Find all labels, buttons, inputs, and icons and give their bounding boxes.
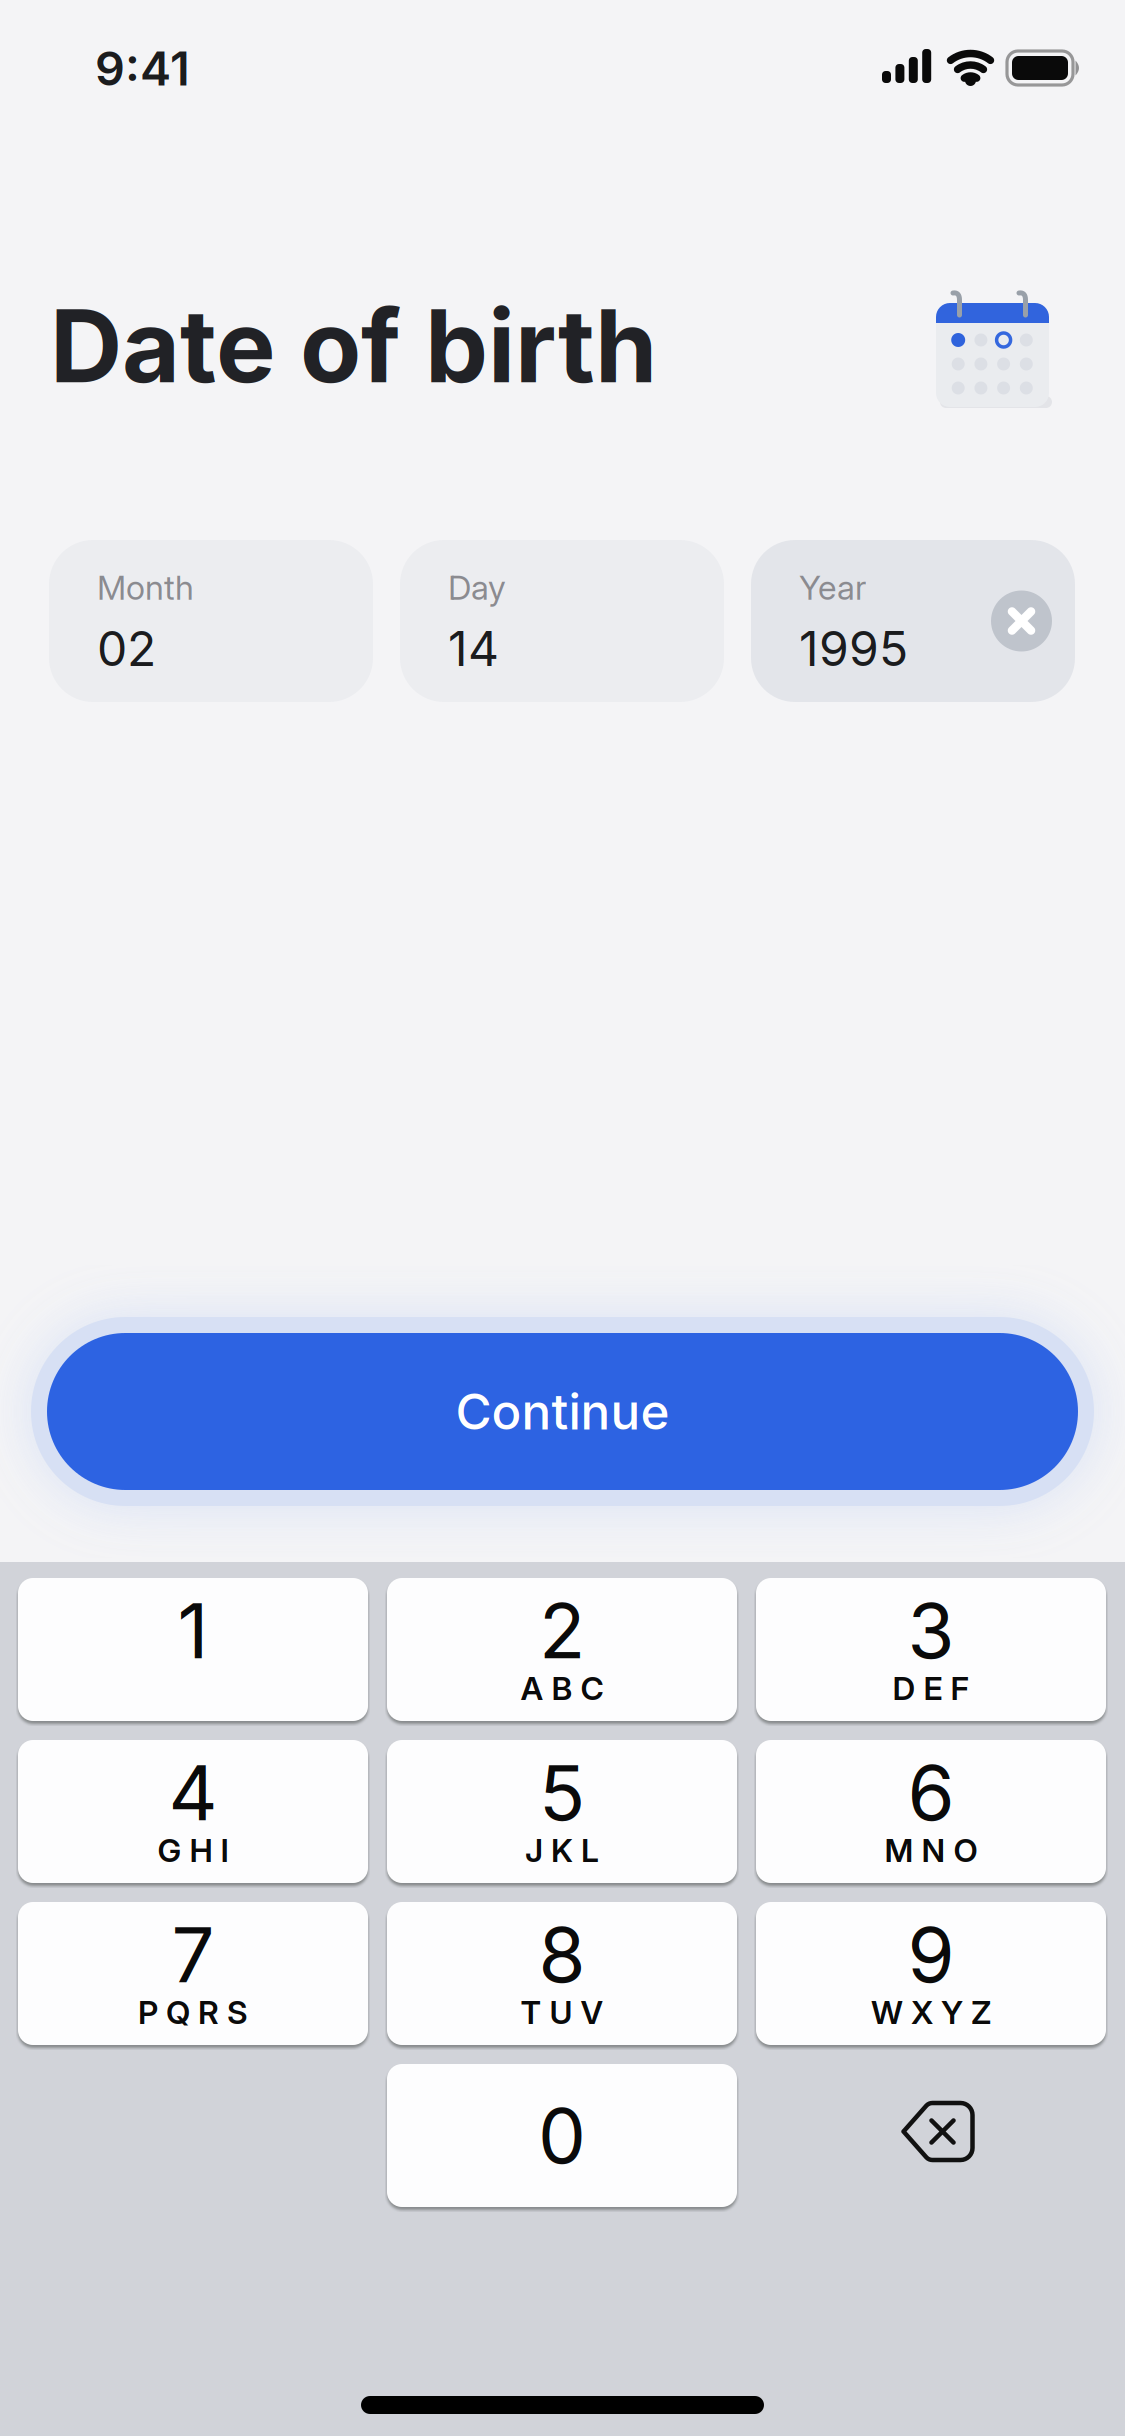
button[interactable]: Year xyxy=(751,540,1075,702)
button[interactable]: 1 xyxy=(18,1578,368,1721)
button[interactable]: Clear year xyxy=(991,590,1052,651)
staticText: A B C xyxy=(520,1669,603,1707)
staticText: 1 xyxy=(177,1586,208,1675)
button[interactable]: 8 xyxy=(387,1902,737,2045)
staticText: Month xyxy=(97,568,194,607)
button[interactable]: 6 xyxy=(756,1740,1106,1883)
staticText: M N O xyxy=(884,1831,977,1869)
staticText: 14 xyxy=(448,620,499,677)
staticText: 3 xyxy=(907,1586,954,1675)
button[interactable]: 2 xyxy=(387,1578,737,1721)
staticText: 8 xyxy=(538,1910,585,1999)
staticText: 2 xyxy=(539,1586,585,1675)
button[interactable]: 9 xyxy=(756,1902,1106,2045)
staticText: 6 xyxy=(907,1748,954,1837)
staticText: 4 xyxy=(168,1748,217,1837)
staticText: 9 xyxy=(907,1910,954,1999)
button[interactable]: Day xyxy=(400,540,724,702)
button[interactable]: 3 xyxy=(756,1578,1106,1721)
staticText: 02 xyxy=(97,620,156,677)
staticText: 9:41 xyxy=(95,41,190,96)
staticText: 0 xyxy=(538,2091,586,2180)
staticText: D E F xyxy=(892,1669,969,1707)
staticText: 5 xyxy=(539,1748,585,1837)
staticText: T U V xyxy=(520,1993,603,2031)
staticText: Year xyxy=(799,568,866,607)
staticText: Continue xyxy=(455,1382,669,1441)
button[interactable]: Delete xyxy=(756,2064,1106,2207)
staticText: 1995 xyxy=(799,620,908,677)
staticText: Date of birth xyxy=(50,287,657,405)
staticText: 7 xyxy=(171,1910,214,1999)
button[interactable]: 0 xyxy=(387,2064,737,2207)
staticText: G H I xyxy=(157,1831,228,1869)
staticText: P Q R S xyxy=(138,1993,248,2031)
button[interactable]: Continue xyxy=(47,1333,1078,1490)
button[interactable]: Month xyxy=(49,540,373,702)
button[interactable]: 7 xyxy=(18,1902,368,2045)
staticText: W X Y Z xyxy=(871,1993,991,2031)
staticText: Day xyxy=(448,568,506,607)
staticText: J K L xyxy=(525,1831,599,1869)
button[interactable]: 4 xyxy=(18,1740,368,1883)
button[interactable]: 5 xyxy=(387,1740,737,1883)
